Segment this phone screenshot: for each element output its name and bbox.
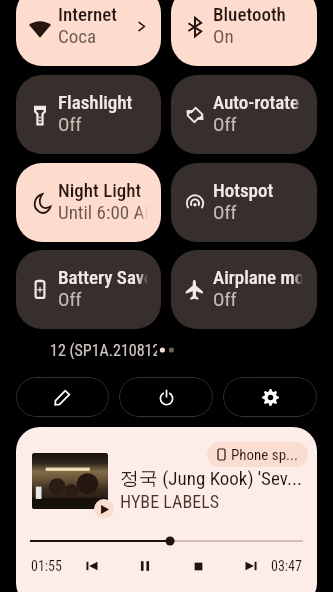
staticText: 12 (SP1A.210812.016): [50, 341, 157, 359]
staticText: On: [213, 25, 234, 47]
staticText: 03:47: [271, 558, 302, 574]
button[interactable]: Auto-rotate: [171, 75, 317, 154]
staticText: HYBE LABELS: [120, 491, 220, 512]
staticText: 정국 (Jung Kook) 'Sev...: [120, 467, 302, 491]
button[interactable]: Phone sp...: [207, 442, 308, 467]
staticText: Off: [213, 113, 237, 135]
button[interactable]: Pause: [134, 555, 156, 577]
button[interactable]: Power: [119, 377, 213, 417]
staticText: Bluetooth: [213, 3, 286, 25]
staticText: Battery Saver: [58, 266, 148, 288]
button[interactable]: Stop: [187, 555, 209, 577]
button[interactable]: Edit tiles: [16, 377, 109, 417]
staticText: Off: [213, 201, 237, 223]
staticText: Airplane mode: [213, 266, 303, 288]
staticText: Off: [213, 288, 237, 310]
button[interactable]: Battery Saver: [16, 250, 161, 329]
staticText: Flashlight: [58, 91, 133, 113]
button[interactable]: Airplane mode: [171, 250, 317, 329]
staticText: Phone sp...: [231, 446, 298, 464]
button[interactable]: Play: [94, 499, 114, 519]
button[interactable]: Bluetooth: [171, 0, 317, 66]
button[interactable]: Internet: [16, 0, 161, 66]
button[interactable]: Next: [240, 555, 262, 577]
staticText: Hotspot: [213, 179, 274, 201]
staticText: 01:55: [31, 558, 62, 574]
staticText: Off: [58, 113, 82, 135]
staticText: Coca: [58, 25, 97, 47]
staticText: Night Light: [58, 179, 142, 201]
button[interactable]: Flashlight: [16, 75, 161, 154]
staticText: Internet: [58, 3, 118, 25]
button[interactable]: Settings: [223, 377, 317, 417]
button[interactable]: Previous: [81, 555, 103, 577]
staticText: Off: [58, 288, 82, 310]
staticText: Auto-rotate: [213, 91, 299, 113]
button[interactable]: Night Light: [16, 163, 161, 242]
button[interactable]: Hotspot: [171, 163, 317, 242]
staticText: Until 6:00 AM: [58, 201, 148, 223]
